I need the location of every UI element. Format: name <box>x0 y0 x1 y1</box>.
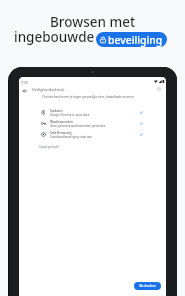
staticText: Geen gehackte wachtwoorden gevonden <box>50 124 106 128</box>
button[interactable]: Updates <box>19 107 166 118</box>
staticText: Updates <box>50 109 63 113</box>
button[interactable]: beveiliging <box>96 32 167 47</box>
button[interactable]: Nu checken <box>134 282 161 290</box>
staticText: Safe Browsing <box>50 131 72 135</box>
staticText: 7:30 <box>21 80 28 85</box>
staticText: Browsen met <box>50 13 136 31</box>
staticText: ingebouwde <box>14 28 95 46</box>
button[interactable]: Zojuist gecheckt <box>39 145 59 149</box>
button[interactable]: Safe Browsing <box>19 129 166 140</box>
staticText: Wachtwoorden <box>50 120 74 124</box>
button[interactable]: Back <box>19 84 30 95</box>
staticText: Google Chrome is up-to-date <box>50 113 90 117</box>
staticText: Standaardbeveiliging staat aan <box>50 135 92 139</box>
staticText: Veiligheidscheck <box>32 87 65 93</box>
button[interactable]: Wachtwoorden <box>19 118 166 129</box>
staticText: Chrome beschermt je tegen gevaarlijke si… <box>42 95 134 99</box>
staticText: Zojuist gecheckt <box>39 145 59 149</box>
staticText: Nu checken <box>139 284 156 288</box>
staticText: beveiliging <box>108 33 163 47</box>
button[interactable]: Account <box>154 84 164 94</box>
